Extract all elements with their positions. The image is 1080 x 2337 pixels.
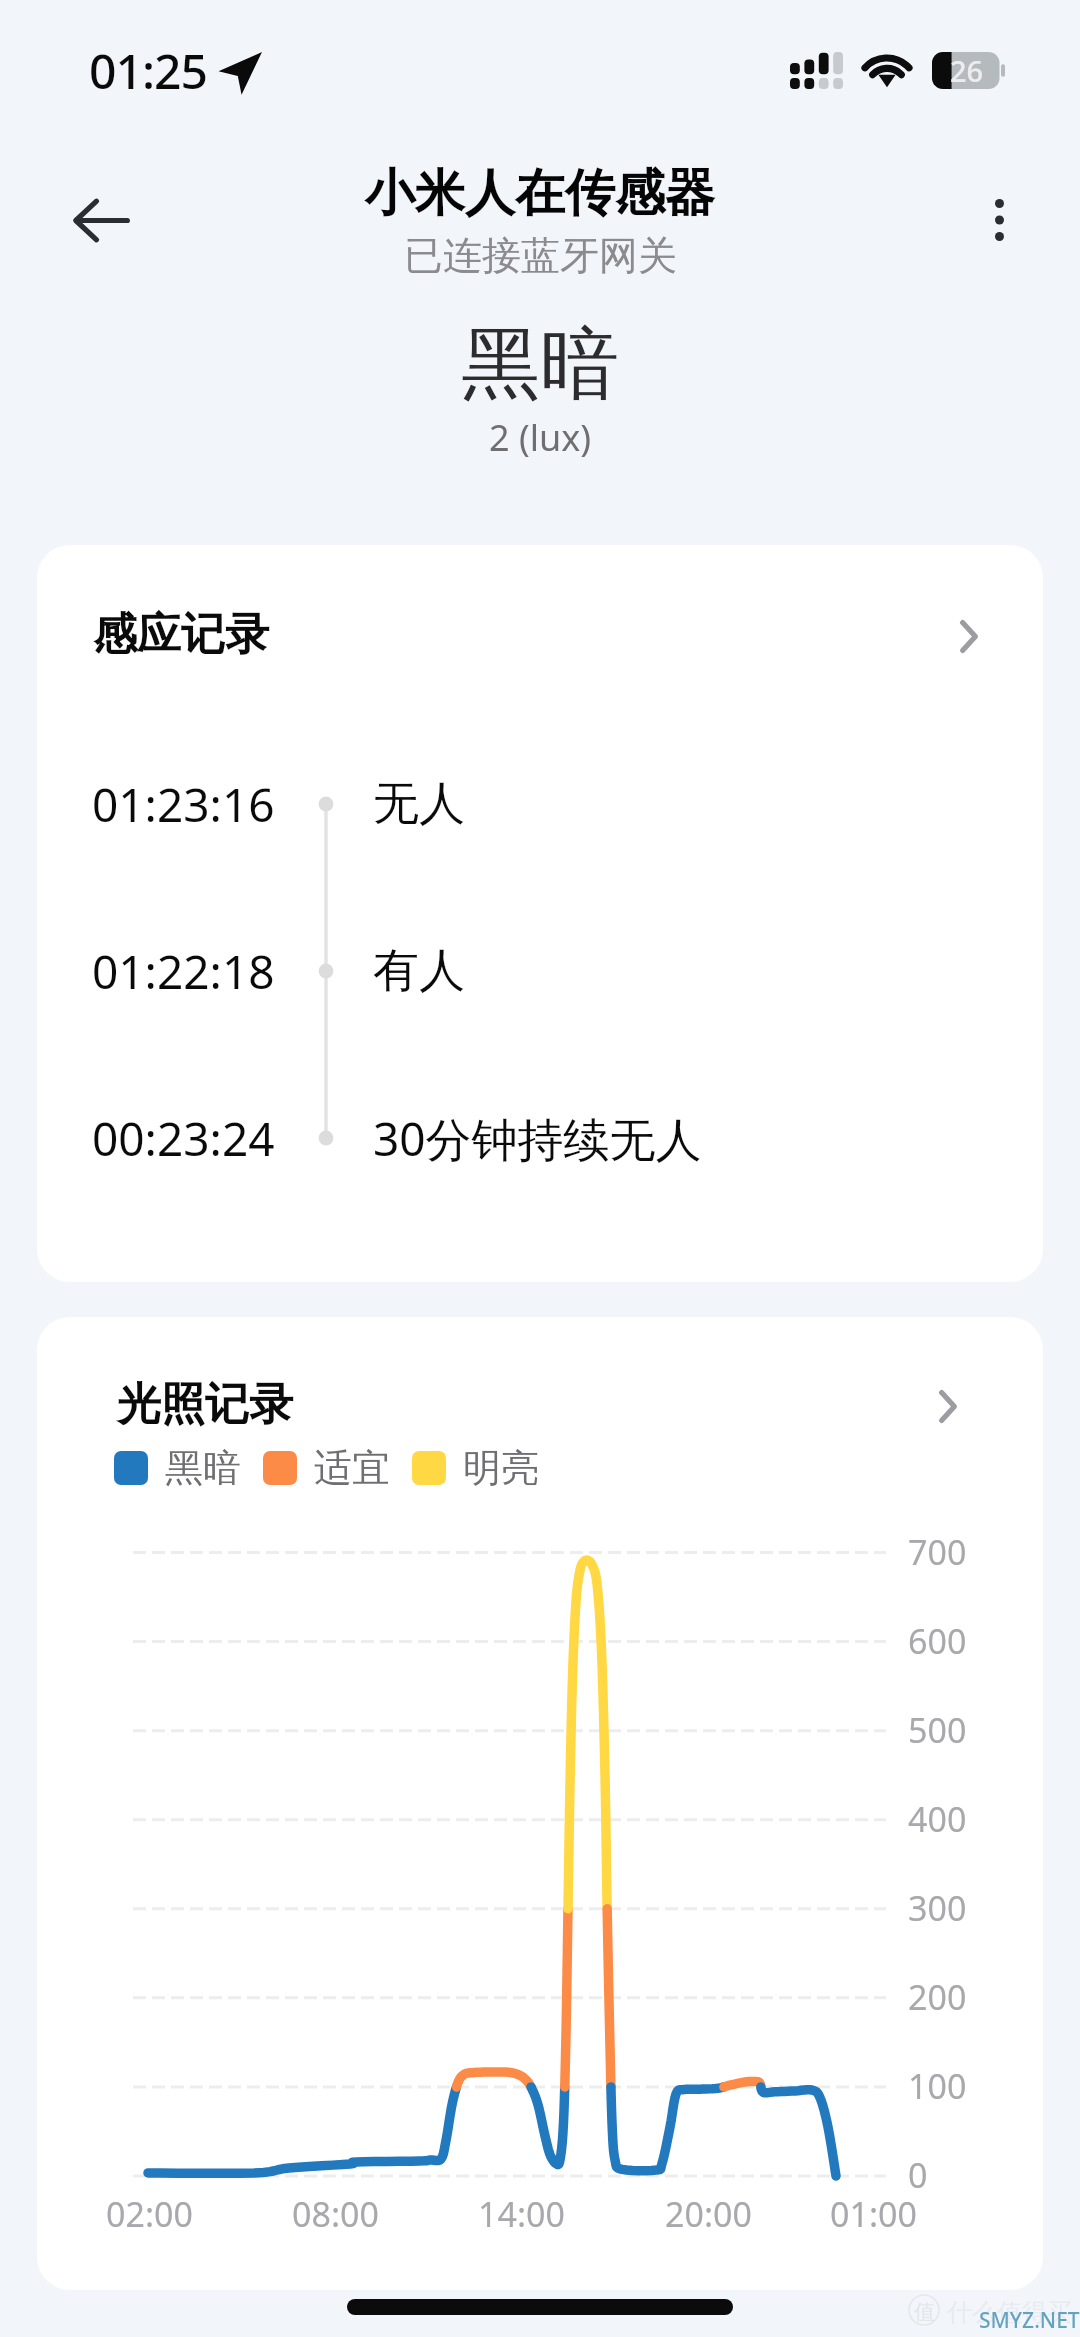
staticText: 0 (908, 2152, 928, 2198)
staticText: 什么值得买 (947, 2297, 1072, 2328)
staticText: 700 (908, 1529, 967, 1575)
staticText: SMYZ.NET (979, 2306, 1080, 2335)
staticText: 01:22:18 (92, 940, 275, 1003)
button[interactable]: 感应记录 (37, 545, 1043, 723)
staticText: 已连接蓝牙网关 (404, 231, 677, 280)
staticText: 适宜 (314, 1444, 390, 1492)
staticText: 20:00 (665, 2191, 752, 2237)
staticText: 感应记录 (93, 607, 269, 662)
staticText: 26 (950, 51, 984, 88)
staticText: 600 (908, 1618, 967, 1664)
staticText: 100 (908, 2063, 967, 2109)
staticText: 值 (914, 2299, 935, 2325)
staticText: 08:00 (292, 2191, 379, 2237)
button[interactable]: 光照记录 (37, 1317, 1043, 1492)
staticText: 有人 (373, 942, 465, 1000)
staticText: 400 (908, 1796, 967, 1842)
staticText: 2 (lux) (489, 413, 592, 462)
staticText: 00:23:24 (92, 1107, 275, 1170)
staticText: 黑暗 (461, 315, 619, 415)
staticText: 02:00 (106, 2191, 193, 2237)
staticText: 300 (908, 1885, 967, 1931)
staticText: 500 (908, 1707, 967, 1753)
staticText: 光照记录 (117, 1377, 293, 1432)
staticText: 01:23:16 (92, 773, 275, 836)
staticText: 01:25 (89, 38, 207, 103)
staticText: 小米人在传感器 (365, 162, 715, 225)
staticText: 黑暗 (165, 1444, 241, 1492)
staticText: 200 (908, 1974, 967, 2020)
staticText: 无人 (373, 775, 465, 833)
staticText: 14:00 (478, 2191, 565, 2237)
staticText: 30分钟持续无人 (373, 1107, 702, 1170)
staticText: 01:00 (830, 2191, 917, 2237)
button[interactable]: Back (46, 165, 156, 275)
staticText: 明亮 (463, 1444, 539, 1492)
button[interactable]: More options (944, 165, 1054, 275)
